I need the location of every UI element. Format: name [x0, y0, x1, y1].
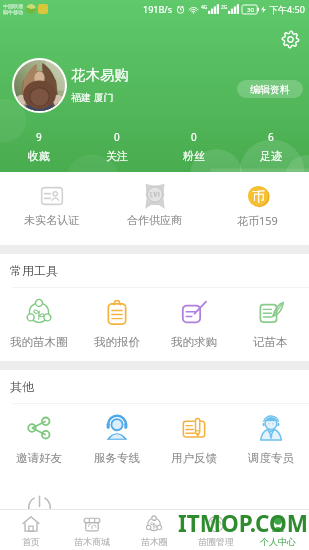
staticText: ITMOP.COM: [178, 508, 309, 539]
staticText: 服务专线: [94, 451, 140, 465]
button[interactable]: 我的苗木圈: [0, 288, 78, 361]
button[interactable]: 编辑资料: [237, 80, 303, 98]
staticText: 花木易购: [71, 66, 129, 84]
staticText: 首页: [22, 536, 40, 547]
button[interactable]: 服务专线: [78, 404, 155, 477]
staticText: 记苗本: [253, 335, 288, 349]
button[interactable]: 6: [232, 130, 309, 163]
staticText: 未实名认证: [24, 213, 79, 227]
button[interactable]: 0: [78, 130, 155, 163]
staticText: 花币159: [237, 213, 278, 228]
button[interactable]: 苗圃管理: [185, 510, 247, 550]
staticText: 苗木商城: [74, 536, 110, 547]
staticText: 4G: [201, 4, 208, 11]
button[interactable]: 记苗本: [232, 288, 309, 361]
button[interactable]: 我的求购: [155, 288, 232, 361]
staticText: 我的报价: [94, 335, 140, 349]
staticText: 合作供应商: [127, 213, 182, 227]
staticText: 0: [114, 130, 120, 144]
staticText: 关注: [106, 149, 128, 163]
staticText: 191B/s: [143, 3, 172, 15]
staticText: 2G: [221, 4, 228, 11]
staticText: 9: [36, 130, 42, 144]
staticText: 邀请好友: [16, 451, 62, 465]
staticText: 0: [191, 130, 197, 144]
staticText: 苗木圈: [141, 536, 168, 547]
button[interactable]: Settings: [279, 28, 301, 50]
button[interactable]: 币: [206, 172, 309, 245]
button[interactable]: 首页: [0, 510, 61, 550]
staticText: 下午4:50: [269, 3, 305, 15]
staticText: 用户反馈: [171, 451, 217, 465]
staticText: 币: [252, 188, 265, 204]
button[interactable]: 苗木圈: [123, 510, 185, 550]
button[interactable]: Avatar: [14, 60, 65, 111]
staticText: 常用工具: [10, 263, 58, 278]
staticText: 其他: [10, 379, 34, 394]
staticText: 我的苗木圈: [10, 335, 68, 349]
button[interactable]: 苗木商城: [61, 510, 123, 550]
staticText: 苗圃管理: [198, 536, 234, 547]
staticText: 粉丝: [183, 149, 205, 163]
button[interactable]: 合作供应商: [103, 172, 206, 245]
staticText: 6: [268, 130, 274, 144]
button[interactable]: 我的报价: [78, 288, 155, 361]
button[interactable]: 0: [155, 130, 232, 163]
button[interactable]: 用户反馈: [155, 404, 232, 477]
staticText: 个人中心: [260, 536, 296, 547]
button[interactable]: 邀请好友: [0, 404, 78, 477]
staticText: 调度专员: [248, 451, 294, 465]
staticText: 编辑资料: [250, 83, 290, 96]
button[interactable]: 个人中心: [247, 510, 309, 550]
button[interactable]: Logout: [23, 491, 55, 523]
staticText: 30: [247, 6, 254, 14]
button[interactable]: 调度专员: [232, 404, 309, 477]
staticText: 蜗牛移动: [3, 9, 23, 15]
staticText: 福建 厦门: [71, 90, 114, 104]
button[interactable]: 未实名认证: [0, 172, 103, 245]
staticText: 我的求购: [171, 335, 217, 349]
staticText: 中国联通: [3, 3, 23, 9]
staticText: 足迹: [260, 149, 282, 163]
staticText: 收藏: [28, 149, 50, 163]
button[interactable]: 9: [0, 130, 78, 163]
